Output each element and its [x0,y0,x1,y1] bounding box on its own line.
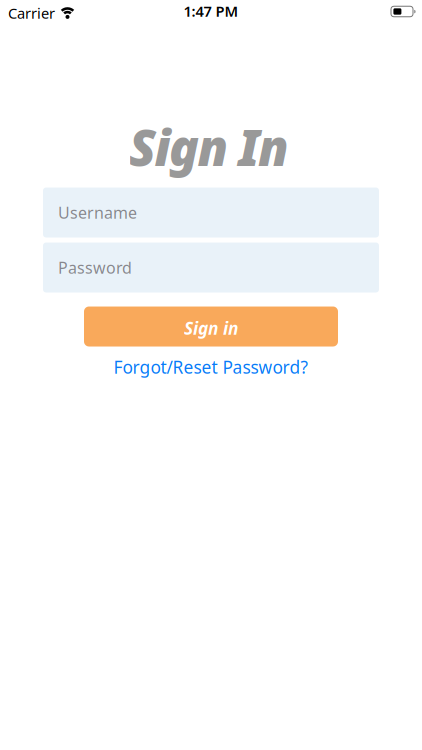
staticText: 1:47 PM [183,1,238,21]
textField[interactable]: Password [43,242,379,292]
button[interactable]: Sign in [84,306,338,346]
textField[interactable]: Username [43,187,379,237]
button[interactable]: Forgot/Reset Password? [113,355,308,378]
staticText: Password [58,257,132,278]
staticText: Forgot/Reset Password? [113,355,308,378]
staticText: Sign in [184,316,238,339]
staticText: Carrier [8,3,55,23]
staticText: Sign In [129,114,289,179]
staticText: Username [58,202,137,223]
